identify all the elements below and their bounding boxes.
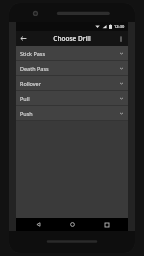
button[interactable]: Back	[25, 218, 51, 231]
button[interactable]: Recent apps	[94, 218, 120, 231]
button[interactable]: Rollover	[16, 76, 128, 90]
button[interactable]: Home	[59, 218, 85, 231]
staticText: Choose Drill	[53, 34, 91, 43]
staticText: 12:30	[114, 24, 125, 29]
staticText: Rollover	[20, 80, 119, 87]
staticText: Stick Pass	[20, 50, 119, 57]
button[interactable]: Pull	[16, 91, 128, 105]
staticText: Pull	[20, 95, 119, 102]
staticText: Push	[20, 110, 119, 117]
button[interactable]: Push	[16, 106, 128, 120]
button[interactable]: Navigate up	[16, 31, 31, 46]
button[interactable]: Stick Pass	[16, 46, 128, 60]
button[interactable]: Death Pass	[16, 61, 128, 75]
button[interactable]: More options	[113, 31, 128, 46]
staticText: Death Pass	[20, 65, 119, 72]
